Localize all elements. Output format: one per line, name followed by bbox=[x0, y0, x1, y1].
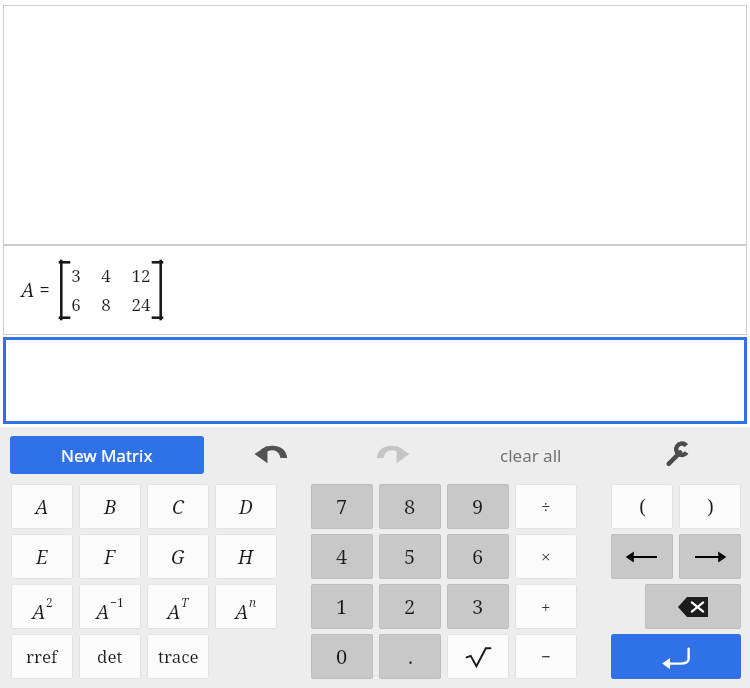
button[interactable] bbox=[3, 337, 747, 424]
staticText: 2 bbox=[404, 593, 416, 620]
staticText: 0 bbox=[336, 643, 348, 670]
button[interactable]: Move right bbox=[679, 534, 741, 579]
button[interactable]: + bbox=[515, 584, 577, 629]
button[interactable]: A bbox=[11, 484, 73, 529]
button[interactable]: F bbox=[79, 534, 141, 579]
button[interactable]: E bbox=[11, 534, 73, 579]
button[interactable]: 6 bbox=[447, 534, 509, 579]
staticText: A bbox=[32, 599, 46, 625]
button[interactable]: 0 bbox=[311, 634, 373, 679]
button[interactable]: New Matrix bbox=[10, 436, 204, 474]
staticText: A bbox=[167, 599, 181, 625]
staticText: 6 bbox=[472, 543, 484, 570]
staticText: 5 bbox=[404, 543, 416, 570]
button[interactable]: A bbox=[11, 584, 73, 629]
staticText: E bbox=[36, 544, 48, 570]
button[interactable]: Move left bbox=[611, 534, 673, 579]
button[interactable]: Backspace bbox=[645, 584, 741, 629]
staticText: trace bbox=[158, 645, 199, 668]
staticText: 8 bbox=[101, 293, 111, 316]
staticText: −1 bbox=[110, 594, 124, 610]
button[interactable]: clear all bbox=[468, 436, 593, 474]
staticText: New Matrix bbox=[61, 444, 153, 467]
button[interactable] bbox=[447, 634, 509, 679]
staticText: 12 bbox=[131, 264, 151, 287]
staticText: 24 bbox=[131, 293, 151, 316]
staticText: 4 bbox=[101, 264, 111, 287]
button[interactable]: 8 bbox=[379, 484, 441, 529]
staticText: A bbox=[96, 599, 110, 625]
staticText: 3 bbox=[472, 593, 484, 620]
staticText: T bbox=[181, 594, 189, 610]
button[interactable]: rref bbox=[11, 634, 73, 679]
button[interactable]: 3 bbox=[447, 584, 509, 629]
button[interactable]: ) bbox=[679, 484, 741, 529]
staticText: 8 bbox=[404, 493, 416, 520]
staticText: det bbox=[97, 645, 123, 668]
staticText: A bbox=[35, 494, 49, 520]
button[interactable]: 1 bbox=[311, 584, 373, 629]
staticText: A = bbox=[21, 277, 50, 303]
button[interactable]: trace bbox=[147, 634, 209, 679]
staticText: 7 bbox=[336, 493, 348, 520]
button[interactable]: − bbox=[515, 634, 577, 679]
staticText: A bbox=[235, 599, 249, 625]
staticText: 9 bbox=[472, 493, 484, 520]
button[interactable]: 4 bbox=[311, 534, 373, 579]
staticText: B bbox=[104, 494, 117, 520]
button[interactable]: H bbox=[215, 534, 277, 579]
staticText: ÷ bbox=[541, 495, 551, 518]
button[interactable]: D bbox=[215, 484, 277, 529]
staticText: × bbox=[541, 545, 551, 568]
button[interactable]: A bbox=[147, 584, 209, 629]
button[interactable]: ( bbox=[611, 484, 673, 529]
staticText: . bbox=[408, 643, 413, 670]
button[interactable]: 2 bbox=[379, 584, 441, 629]
button[interactable]: 7 bbox=[311, 484, 373, 529]
staticText: ( bbox=[639, 493, 646, 520]
staticText: C bbox=[172, 494, 184, 520]
staticText: 6 bbox=[71, 293, 81, 316]
button[interactable]: 9 bbox=[447, 484, 509, 529]
staticText: G bbox=[171, 544, 185, 570]
staticText: 1 bbox=[336, 593, 348, 620]
button[interactable]: 5 bbox=[379, 534, 441, 579]
staticText: F bbox=[104, 544, 116, 570]
staticText: rref bbox=[26, 645, 58, 668]
button[interactable]: Redo bbox=[360, 436, 424, 474]
staticText: ) bbox=[707, 493, 714, 520]
button[interactable]: B bbox=[79, 484, 141, 529]
staticText: + bbox=[541, 595, 551, 618]
button[interactable]: Enter bbox=[611, 634, 741, 679]
button[interactable]: A bbox=[79, 584, 141, 629]
staticText: D bbox=[239, 494, 253, 520]
staticText: H bbox=[238, 544, 254, 570]
button[interactable]: × bbox=[515, 534, 577, 579]
button[interactable]: C bbox=[147, 484, 209, 529]
button[interactable]: G bbox=[147, 534, 209, 579]
button[interactable]: A bbox=[215, 584, 277, 629]
button[interactable]: . bbox=[379, 634, 441, 679]
staticText: 3 bbox=[71, 264, 81, 287]
button[interactable]: Undo bbox=[240, 436, 304, 474]
button[interactable]: ÷ bbox=[515, 484, 577, 529]
staticText: clear all bbox=[500, 444, 562, 467]
staticText: n bbox=[249, 594, 257, 610]
button[interactable]: det bbox=[79, 634, 141, 679]
button[interactable]: Settings bbox=[645, 436, 709, 474]
staticText: 4 bbox=[336, 543, 348, 570]
staticText: 2 bbox=[46, 594, 53, 610]
staticText: − bbox=[541, 645, 551, 668]
